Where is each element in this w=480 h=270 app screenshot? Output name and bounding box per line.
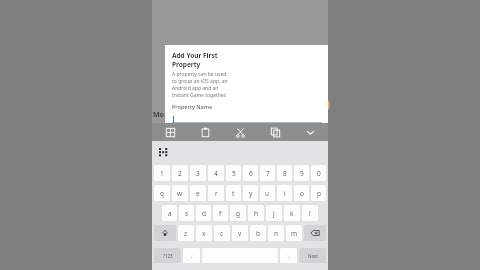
- staticText: 8: [283, 169, 287, 178]
- button[interactable]: y: [243, 185, 258, 201]
- staticText: ?123: [163, 253, 173, 259]
- staticText: h: [254, 209, 259, 218]
- staticText: Android app and an: [172, 85, 219, 92]
- button[interactable]: x: [196, 225, 212, 241]
- staticText: Add Your First: [172, 51, 218, 60]
- button[interactable]: w: [172, 185, 188, 201]
- staticText: A property can be used: [172, 71, 227, 78]
- staticText: p: [317, 189, 321, 198]
- button[interactable]: n: [268, 225, 284, 241]
- button[interactable]: ?123: [154, 248, 181, 263]
- staticText: c: [220, 229, 224, 238]
- button[interactable]: 9: [294, 165, 309, 181]
- staticText: b: [256, 229, 260, 238]
- staticText: u: [265, 189, 270, 198]
- button[interactable]: l: [302, 205, 318, 221]
- button[interactable]: .: [280, 248, 297, 263]
- staticText: q: [160, 189, 164, 198]
- staticText: s: [185, 209, 189, 218]
- staticText: d: [202, 209, 206, 218]
- staticText: 6: [249, 169, 253, 178]
- button[interactable]: 4: [208, 165, 224, 181]
- button[interactable]: f: [213, 205, 228, 221]
- button[interactable]: Cut: [223, 123, 258, 141]
- staticText: x: [202, 229, 206, 238]
- staticText: .: [288, 252, 290, 259]
- staticText: j: [273, 209, 275, 218]
- button[interactable]: 1: [154, 165, 170, 181]
- staticText: n: [274, 229, 279, 238]
- button[interactable]: Keyboard options: [156, 145, 170, 159]
- button[interactable]: 0: [311, 165, 326, 181]
- staticText: o: [300, 189, 304, 198]
- staticText: r: [215, 189, 218, 198]
- staticText: l: [309, 209, 311, 218]
- button[interactable]: e: [190, 185, 206, 201]
- staticText: f: [219, 209, 222, 218]
- staticText: Instant Game together.: [172, 92, 227, 99]
- button[interactable]: c: [214, 225, 230, 241]
- button[interactable]: k: [284, 205, 300, 221]
- button[interactable]: 3: [190, 165, 206, 181]
- staticText: 2: [178, 169, 182, 178]
- staticText: v: [238, 229, 242, 238]
- button[interactable]: v: [232, 225, 248, 241]
- button[interactable]: Copy: [258, 123, 293, 141]
- button[interactable]: 2: [172, 165, 188, 181]
- staticText: 1: [160, 169, 164, 178]
- staticText: w: [177, 189, 183, 198]
- button[interactable]: Backspace: [304, 225, 326, 241]
- button[interactable]: Select all: [152, 123, 188, 141]
- button[interactable]: 8: [277, 165, 292, 181]
- button[interactable]: o: [294, 185, 309, 201]
- staticText: Mo: [153, 110, 164, 120]
- staticText: i: [284, 189, 286, 198]
- button[interactable]: d: [196, 205, 211, 221]
- button[interactable]: z: [178, 225, 194, 241]
- staticText: 0: [317, 169, 321, 178]
- staticText: 7: [266, 169, 270, 178]
- button[interactable]: t: [226, 185, 241, 201]
- staticText: to group an iOS app, an: [172, 78, 228, 85]
- staticText: 3: [196, 169, 200, 178]
- button[interactable]: 6: [243, 165, 258, 181]
- staticText: 5: [232, 169, 236, 178]
- button[interactable]: a: [162, 205, 177, 221]
- button[interactable]: m: [286, 225, 302, 241]
- button[interactable]: j: [266, 205, 282, 221]
- button[interactable]: ,: [183, 248, 200, 263]
- staticText: 4: [214, 169, 218, 178]
- staticText: y: [249, 189, 253, 198]
- staticText: ,: [191, 252, 193, 259]
- button[interactable]: 7: [260, 165, 275, 181]
- button[interactable]: q: [154, 185, 170, 201]
- button[interactable]: Add: [312, 96, 330, 114]
- button[interactable]: p: [311, 185, 326, 201]
- button[interactable]: Shift: [154, 225, 176, 241]
- button[interactable]: [172, 113, 322, 123]
- staticText: e: [196, 189, 200, 198]
- staticText: Property Name: [172, 103, 213, 110]
- staticText: a: [168, 209, 172, 218]
- button[interactable]: u: [260, 185, 275, 201]
- button[interactable]: s: [179, 205, 194, 221]
- staticText: Next: [308, 253, 318, 259]
- button[interactable]: i: [277, 185, 292, 201]
- button[interactable]: g: [230, 205, 246, 221]
- staticText: Property: [172, 60, 201, 69]
- button[interactable]: h: [248, 205, 264, 221]
- staticText: t: [232, 189, 235, 198]
- staticText: 9: [300, 169, 304, 178]
- button[interactable]: Paste: [188, 123, 223, 141]
- button[interactable]: b: [250, 225, 266, 241]
- staticText: g: [236, 209, 240, 218]
- button[interactable]: More options: [293, 123, 328, 141]
- staticText: z: [184, 229, 188, 238]
- button[interactable]: 5: [226, 165, 241, 181]
- staticText: m: [291, 229, 298, 238]
- button[interactable]: r: [208, 185, 224, 201]
- button[interactable]: Next: [299, 248, 326, 263]
- staticText: k: [290, 209, 294, 218]
